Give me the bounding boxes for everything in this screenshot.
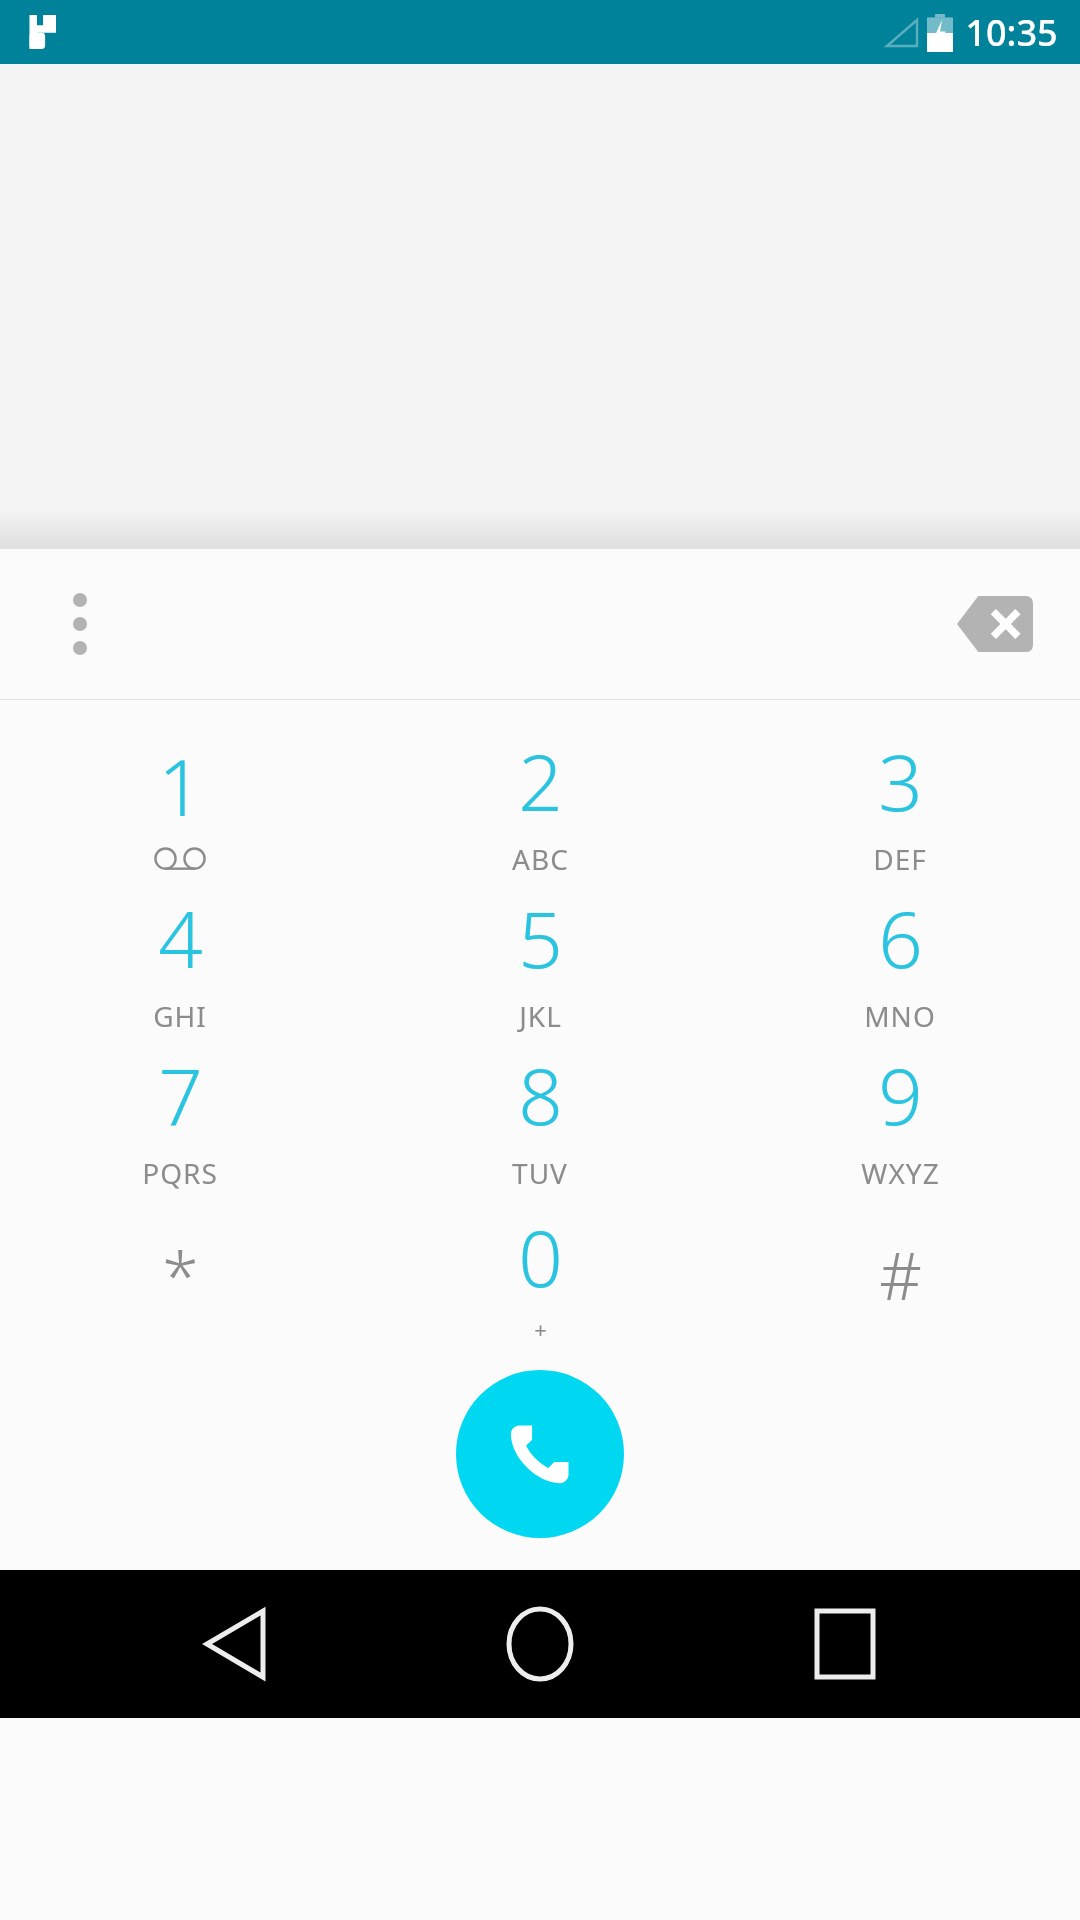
staticText: JKL [519,997,562,1035]
staticText: TUV [512,1154,568,1192]
staticText: 5 [518,885,563,991]
staticText: DEF [873,840,927,878]
button[interactable]: More options [30,569,130,679]
button[interactable]: 7 [0,1038,360,1195]
button[interactable]: 0 [360,1195,720,1352]
button[interactable]: Home [470,1574,610,1714]
staticText: 9 [878,1042,923,1148]
button[interactable]: * [0,1195,360,1352]
button[interactable]: 5 [360,881,720,1038]
button[interactable]: Call [456,1370,624,1538]
staticText: 7 [158,1042,203,1148]
button[interactable]: 8 [360,1038,720,1195]
staticText: WXYZ [861,1154,940,1192]
staticText: 3 [878,728,923,834]
button[interactable]: Back [165,1574,305,1714]
button[interactable]: 3 [720,724,1080,881]
staticText: 10:35 [965,8,1058,57]
button[interactable]: 9 [720,1038,1080,1195]
staticText: PQRS [142,1154,218,1192]
staticText: 8 [518,1042,563,1148]
staticText: MNO [864,997,936,1035]
button[interactable]: 1 [0,724,360,881]
staticText: 4 [158,885,203,991]
staticText: GHI [153,997,207,1035]
staticText: 0 [518,1204,563,1310]
button[interactable]: 6 [720,881,1080,1038]
button[interactable]: # [720,1195,1080,1352]
button[interactable]: Backspace [935,569,1055,679]
button[interactable]: 2 [360,724,720,881]
staticText: ABC [512,840,569,878]
button[interactable]: 4 [0,881,360,1038]
staticText: 6 [878,885,923,991]
staticText: * [162,1229,199,1319]
staticText: + [534,1314,548,1344]
staticText: 2 [518,728,563,834]
staticText: # [879,1229,922,1319]
staticText: 1 [158,733,203,839]
button[interactable]: Recent apps [775,1574,915,1714]
